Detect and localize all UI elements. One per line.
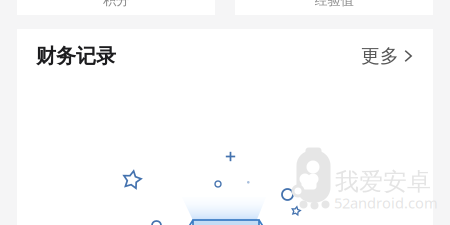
staticText: 52android.com [334,193,438,212]
staticText: 经验值 [314,0,353,8]
button[interactable]: 更多 [361,44,413,67]
button[interactable]: 经验值 [235,0,433,15]
staticText: 财务记录 [36,44,116,68]
staticText: 我爱安卓 [335,167,431,196]
button[interactable]: 积分 [17,0,215,15]
staticText: 更多 [361,44,399,67]
staticText: 积分 [103,0,129,8]
